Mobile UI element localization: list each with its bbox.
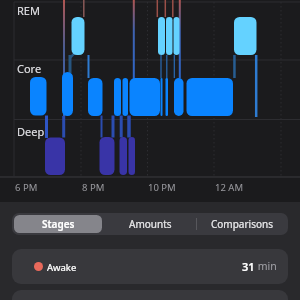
button[interactable]: Stages [14,215,102,233]
button[interactable]: Comparisons [196,213,288,235]
staticText: Deep [17,124,45,139]
staticText: Awake [47,261,77,274]
staticText: 12 AM [215,181,244,194]
button[interactable]: Awake [12,249,288,284]
staticText: 8 PM [82,181,105,194]
staticText: 31 [242,259,255,274]
staticText: Stages [42,217,75,231]
staticText: Core [17,61,42,76]
staticText: Amounts [129,217,172,231]
staticText: min [255,259,277,273]
staticText: REM [17,3,40,18]
button[interactable]: Amounts [104,213,196,235]
staticText: Comparisons [211,217,273,231]
staticText: 6 PM [15,181,38,194]
staticText: 10 PM [148,181,176,194]
